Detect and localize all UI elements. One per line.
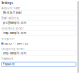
staticText: Outgoing server [1, 47, 24, 50]
staticText: SSL/TLS [4, 42, 11, 45]
staticText: Incoming server [1, 27, 23, 30]
staticText: Password [3, 63, 15, 66]
staticText: Encryption [1, 37, 15, 40]
staticText: Account name [1, 6, 20, 10]
staticText: you@example.com [3, 21, 26, 25]
staticText: imap.example.com [3, 31, 26, 35]
staticText: Email address [1, 16, 18, 20]
staticText: smtp.example.com [3, 51, 26, 55]
staticText: Password [1, 57, 13, 60]
staticText: STARTTLS [16, 42, 27, 45]
staticText: Settings [1, 1, 12, 5]
staticText: Work Self Email [3, 11, 22, 14]
